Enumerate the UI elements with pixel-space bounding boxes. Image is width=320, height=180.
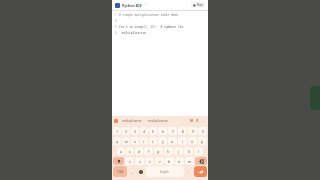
button[interactable]: w — [122, 137, 130, 145]
button[interactable]: 5 — [149, 127, 157, 135]
staticText: l — [198, 149, 199, 154]
staticText: y — [162, 139, 164, 144]
button[interactable]: Backspace — [195, 157, 207, 165]
staticText: i — [182, 139, 183, 144]
button[interactable]: m — [185, 157, 194, 165]
staticText: 0 — [202, 129, 204, 134]
staticText: m — [188, 159, 192, 164]
button[interactable]: ?123 — [113, 166, 127, 177]
staticText: 9 — [192, 129, 194, 134]
button[interactable]: e — [131, 137, 139, 145]
button[interactable]: d — [135, 147, 143, 155]
staticText: z — [129, 159, 131, 164]
staticText: k — [188, 149, 190, 154]
staticText: 4 — [115, 31, 117, 35]
button[interactable]: g — [154, 147, 163, 155]
button[interactable]: l — [194, 147, 203, 155]
button[interactable]: More — [202, 119, 206, 123]
button[interactable]: a — [117, 147, 125, 155]
staticText: 4 — [143, 129, 145, 134]
button[interactable]: c — [145, 157, 154, 165]
button[interactable]: x — [135, 157, 144, 165]
button[interactable]: r — [140, 137, 148, 145]
button[interactable]: o — [188, 137, 197, 145]
button[interactable]: multiplication — [147, 119, 169, 123]
button[interactable]: Clipboard — [114, 119, 118, 123]
staticText: ?123 — [117, 170, 124, 174]
button[interactable]: n — [175, 157, 184, 165]
staticText: English — [160, 170, 170, 174]
button[interactable]: t — [149, 137, 157, 145]
staticText: for i in range(1, 11): # numbers for — [119, 25, 184, 29]
button[interactable]: 4 — [140, 127, 148, 135]
button[interactable]: Comma — [128, 166, 136, 177]
staticText: j — [178, 149, 179, 154]
button[interactable]: 2 — [122, 127, 130, 135]
staticText: Run — [197, 3, 203, 7]
button[interactable]: s — [126, 147, 134, 155]
button[interactable]: Period — [185, 166, 193, 177]
button[interactable]: 9 — [188, 127, 197, 135]
button[interactable]: h — [164, 147, 173, 155]
button[interactable]: 8 — [178, 127, 187, 135]
staticText: , — [131, 169, 133, 174]
staticText: Python IDE — [122, 3, 142, 8]
button[interactable]: f — [144, 147, 153, 155]
button[interactable]: u — [168, 137, 177, 145]
staticText: g — [157, 149, 160, 154]
staticText: h — [167, 149, 170, 154]
staticText: n — [178, 159, 181, 164]
staticText: 6 — [162, 129, 164, 134]
button[interactable]: Run — [191, 2, 205, 8]
button[interactable]: Emoji — [137, 166, 145, 177]
button[interactable]: z — [125, 157, 134, 165]
staticText: ⋮ — [202, 119, 206, 123]
staticText: u — [171, 139, 174, 144]
staticText: w — [125, 139, 128, 144]
button[interactable]: p — [198, 137, 207, 145]
button[interactable]: j — [174, 147, 183, 155]
staticText: 1 — [115, 13, 117, 17]
staticText: 2 — [115, 19, 117, 23]
staticText: b — [168, 159, 171, 164]
button[interactable]: k — [184, 147, 193, 155]
button[interactable]: y — [158, 137, 167, 145]
button[interactable]: v — [155, 157, 164, 165]
staticText: e — [134, 139, 136, 144]
staticText: p — [201, 139, 204, 144]
staticText: a — [120, 149, 122, 154]
staticText: # simple multiplication table demo — [119, 13, 178, 17]
staticText: d — [138, 149, 141, 154]
button[interactable]: multiplicative — [121, 119, 143, 123]
staticText: v — [159, 159, 161, 164]
button[interactable]: b — [165, 157, 174, 165]
staticText: multiplication — [122, 31, 147, 35]
staticText: multiplicative — [122, 119, 142, 123]
button[interactable]: Shift — [113, 157, 124, 165]
staticText: N — [190, 118, 193, 123]
button[interactable]: Enter — [194, 166, 207, 177]
staticText: · · — [144, 3, 148, 7]
staticText: 3 — [134, 129, 136, 134]
button[interactable]: 1 — [113, 127, 121, 135]
staticText: q — [116, 139, 119, 144]
button[interactable]: 7 — [168, 127, 177, 135]
staticText: t — [152, 139, 154, 144]
button[interactable]: q — [113, 137, 121, 145]
staticText: c — [149, 159, 151, 164]
staticText: multiplication — [148, 119, 168, 123]
button[interactable]: 3 — [131, 127, 139, 135]
button[interactable]: English — [146, 166, 184, 177]
staticText: . — [188, 169, 190, 174]
button[interactable]: i — [178, 137, 187, 145]
button[interactable]: Bold — [190, 118, 193, 123]
button[interactable]: Close — [196, 118, 199, 123]
staticText: 3 — [115, 25, 117, 29]
staticText: x — [139, 159, 141, 164]
staticText: 1 — [116, 129, 118, 134]
staticText: 2 — [125, 129, 127, 134]
button[interactable]: 6 — [158, 127, 167, 135]
button[interactable]: 0 — [198, 127, 207, 135]
staticText: o — [191, 139, 194, 144]
